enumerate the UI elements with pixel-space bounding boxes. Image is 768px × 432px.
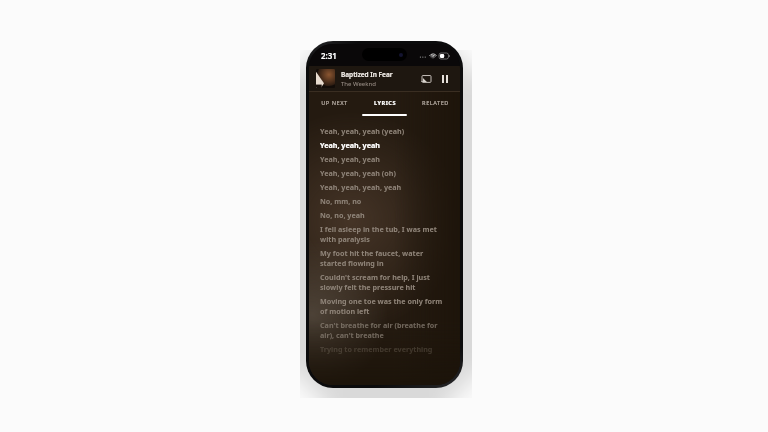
staticText: 2:31 <box>321 50 337 61</box>
staticText: Yeah, yeah, yeah, yeah <box>320 182 402 192</box>
button[interactable]: Pause <box>437 71 453 87</box>
button[interactable]: Yeah, yeah, yeah <box>320 140 446 150</box>
button[interactable]: Yeah, yeah, yeah, yeah <box>320 182 446 192</box>
button[interactable]: Yeah, yeah, yeah (yeah) <box>320 126 446 136</box>
staticText: LYRICS <box>374 99 396 107</box>
button[interactable]: My foot hit the faucet, water started fl… <box>320 248 446 268</box>
staticText: Can't breathe for air (breathe for air),… <box>320 320 446 340</box>
staticText: My foot hit the faucet, water started fl… <box>320 248 446 268</box>
button[interactable]: RELATED <box>410 92 460 114</box>
button[interactable]: UP NEXT <box>309 92 360 114</box>
button[interactable]: No, mm, no <box>320 196 446 206</box>
staticText: Moving one toe was the only form of moti… <box>320 296 446 316</box>
button[interactable]: Cast <box>418 71 434 87</box>
button[interactable]: Couldn't scream for help, I just slowly … <box>320 272 446 292</box>
staticText: Yeah, yeah, yeah (yeah) <box>320 126 405 136</box>
button[interactable]: Moving one toe was the only form of moti… <box>320 296 446 316</box>
staticText: No, no, yeah <box>320 210 365 220</box>
button[interactable]: Trying to remember everything <box>320 344 446 354</box>
button[interactable]: Can't breathe for air (breathe for air),… <box>320 320 446 340</box>
button[interactable]: Yeah, yeah, yeah <box>320 154 446 164</box>
staticText: No, mm, no <box>320 196 362 206</box>
staticText: The Weeknd <box>341 80 376 88</box>
staticText: UP NEXT <box>321 99 348 107</box>
staticText: Yeah, yeah, yeah <box>320 154 380 164</box>
button[interactable]: I fell asleep in the tub, I was met with… <box>320 224 446 244</box>
staticText: Trying to remember everything <box>320 344 433 354</box>
staticText: Baptized In Fear <box>341 70 393 79</box>
staticText: I fell asleep in the tub, I was met with… <box>320 224 446 244</box>
button[interactable]: LYRICS <box>360 92 410 114</box>
staticText: Yeah, yeah, yeah <box>320 140 380 150</box>
staticText: Yeah, yeah, yeah (oh) <box>320 168 396 178</box>
button[interactable]: No, no, yeah <box>320 210 446 220</box>
button[interactable]: Yeah, yeah, yeah (oh) <box>320 168 446 178</box>
staticText: RELATED <box>422 99 449 107</box>
staticText: Couldn't scream for help, I just slowly … <box>320 272 446 292</box>
